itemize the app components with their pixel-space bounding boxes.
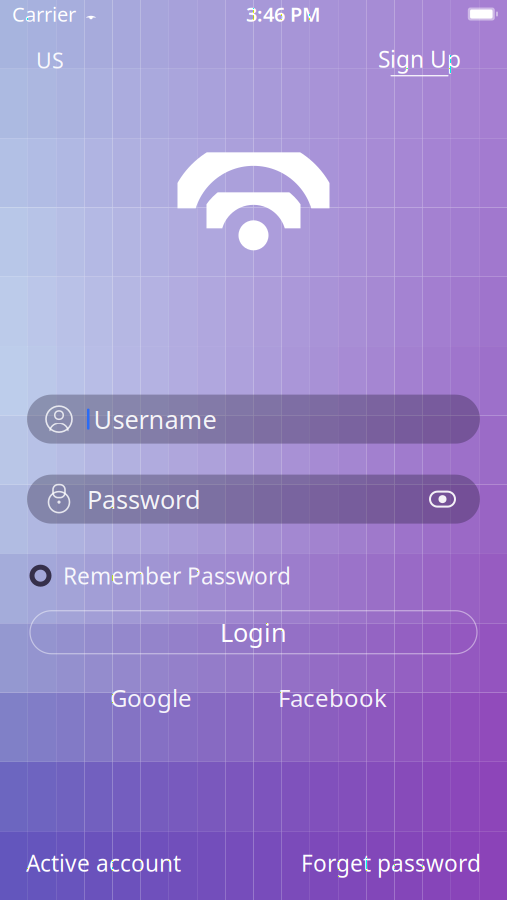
button[interactable]: Active account (26, 842, 181, 884)
staticText: Facebook (278, 682, 387, 714)
button[interactable]: Remember Password (32, 555, 291, 597)
staticText: Carrier (12, 1, 76, 27)
button[interactable]: Facebook (272, 676, 393, 720)
button[interactable]: Google (104, 676, 198, 720)
button[interactable]: Show password (425, 486, 460, 512)
button[interactable]: Sign Up (374, 40, 465, 80)
staticText: Login (220, 615, 287, 649)
button[interactable]: Login (30, 611, 477, 654)
staticText: Google (110, 682, 192, 714)
staticText: Sign Up (378, 44, 461, 74)
button[interactable]: US (28, 40, 72, 80)
staticText: Password (87, 482, 201, 516)
staticText: Remember Password (63, 561, 291, 591)
staticText: Forget password (301, 848, 481, 878)
staticText: Active account (26, 848, 181, 878)
staticText: Username (93, 402, 216, 436)
staticText: US (36, 46, 64, 74)
staticText: 3:46 PM (246, 1, 321, 27)
button[interactable]: Forget password (301, 842, 481, 884)
